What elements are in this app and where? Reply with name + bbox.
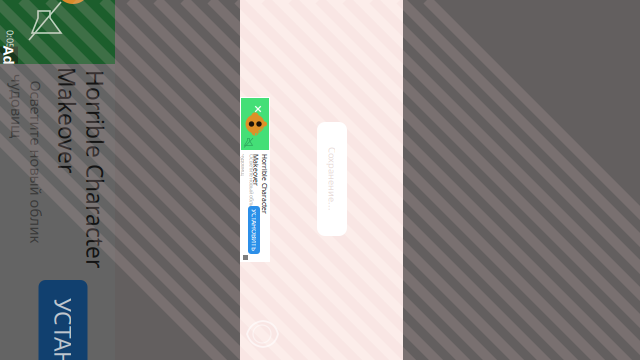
staticText: Makeover <box>229 174 261 183</box>
staticText: УСТАНОВИТЬ <box>284 176 326 185</box>
staticText: Осветите новый облик <box>0 192 121 211</box>
staticText: Horrible Character <box>229 165 289 174</box>
staticText: Сохранение... <box>300 173 364 185</box>
staticText: чудовищ <box>229 188 251 195</box>
staticText: Осветите новый облик <box>229 179 285 187</box>
staticText: Makeover <box>0 155 50 185</box>
button[interactable]: УСТАНОВИТЬ <box>157 150 259 199</box>
staticText: Horrible Character <box>0 127 145 157</box>
button[interactable]: УСТАНОВИТЬ <box>281 174 329 186</box>
staticText: УСТАНОВИТЬ <box>175 159 321 189</box>
